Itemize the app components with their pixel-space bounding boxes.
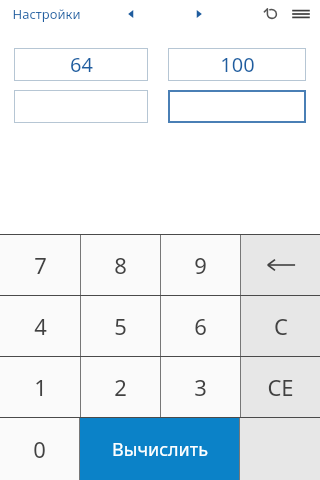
button[interactable]: Backspace [241, 235, 320, 295]
staticText: 1 [34, 372, 47, 402]
staticText: 8 [114, 250, 127, 280]
staticText: 5 [114, 311, 127, 341]
staticText: 6 [194, 311, 207, 341]
button[interactable] [168, 90, 306, 123]
staticText: Вычислить [112, 437, 208, 462]
button[interactable]: Настройки [12, 5, 81, 23]
button[interactable]: 4 [0, 296, 80, 356]
button[interactable]: 2 [81, 357, 160, 417]
staticText: 4 [34, 311, 47, 341]
button[interactable]: 9 [161, 235, 240, 295]
button[interactable]: 7 [0, 235, 80, 295]
staticText: 7 [34, 250, 47, 280]
staticText: 100 [220, 51, 255, 78]
staticText: 3 [194, 372, 207, 402]
button[interactable]: 1 [0, 357, 80, 417]
button[interactable]: 100 [168, 48, 306, 81]
button[interactable]: Menu [288, 1, 314, 27]
staticText: 0 [33, 434, 46, 464]
staticText: CE [267, 372, 294, 402]
button[interactable]: 0 [0, 418, 79, 480]
button[interactable]: Undo [258, 1, 284, 27]
button[interactable]: 8 [81, 235, 160, 295]
button[interactable]: 5 [81, 296, 160, 356]
button[interactable]: CE [241, 357, 320, 417]
staticText: 2 [114, 372, 127, 402]
button[interactable]: 6 [161, 296, 240, 356]
button[interactable]: 3 [161, 357, 240, 417]
button[interactable]: 64 [14, 48, 148, 81]
button[interactable]: Previous [119, 2, 143, 26]
button[interactable]: Next [187, 2, 211, 26]
button[interactable]: Вычислить [80, 418, 239, 480]
staticText: 9 [194, 250, 207, 280]
button[interactable] [14, 90, 148, 123]
staticText: Настройки [12, 5, 81, 23]
staticText: 64 [70, 51, 93, 78]
button[interactable]: C [241, 296, 320, 356]
staticText: C [274, 311, 288, 341]
